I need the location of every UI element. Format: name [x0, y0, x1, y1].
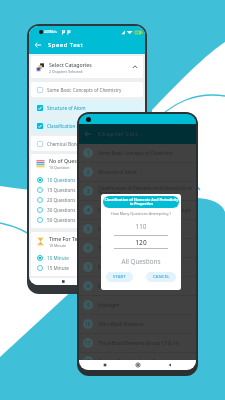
staticText: 8 [87, 283, 90, 289]
button[interactable]: Back [166, 361, 174, 369]
staticText: 3 [87, 188, 90, 194]
button[interactable]: Time For Test [31, 232, 143, 250]
staticText: Chemical Bonding [47, 141, 87, 147]
staticText: 5 [87, 226, 90, 232]
button[interactable]: 15 Minute [31, 263, 143, 273]
button[interactable]: 8 [79, 277, 196, 296]
staticText: Thermodynamics [98, 245, 192, 251]
staticText: 11 [85, 340, 91, 346]
button[interactable]: 7 [79, 258, 196, 277]
button[interactable]: Select Catagories [31, 56, 143, 78]
staticText: Time For Test [49, 235, 83, 242]
staticText: 30 Questions [47, 207, 76, 213]
staticText: Classification of Elements And Periodici… [98, 185, 192, 197]
button[interactable]: No of Questions [31, 154, 143, 172]
button[interactable]: 20 Questions [31, 195, 143, 205]
staticText: 110 [101, 222, 181, 231]
staticText: 1 [87, 150, 90, 156]
staticText: Some Basic Concepts of Chemistry [98, 150, 192, 156]
button[interactable]: 10 Questions [31, 175, 143, 185]
staticText: Chemical Bonding and Molecular Structure [98, 207, 192, 213]
button[interactable]: 50 Questions [31, 215, 143, 225]
staticText: 10 Minute [47, 255, 69, 261]
button[interactable]: 10 [79, 315, 196, 334]
staticText: START [113, 274, 126, 280]
staticText: 20 Questions [47, 197, 76, 203]
button[interactable]: Home [134, 361, 142, 369]
staticText: 2 Chapters Selected [49, 69, 83, 74]
staticText: Select Catagories [49, 61, 92, 68]
staticText: 15 Minute [47, 265, 69, 271]
staticText: Classification of Elements [47, 123, 102, 129]
button[interactable]: Chemical Bonding [31, 136, 143, 151]
button[interactable]: 2 [79, 163, 196, 182]
staticText: 120 [101, 238, 181, 247]
staticText: All Questions [101, 257, 181, 266]
staticText: States of Matter [98, 226, 192, 232]
button[interactable]: Some Basic Concepts of Chemistry [31, 82, 143, 97]
staticText: Equilibrium [98, 264, 192, 270]
staticText: Hydrogen [98, 302, 192, 308]
button[interactable]: 1 [79, 144, 196, 163]
button[interactable]: 12 [79, 353, 196, 370]
staticText: Organic Chemistry Some Basic [98, 358, 192, 364]
button[interactable]: 6 [79, 239, 196, 258]
button[interactable]: Back [84, 130, 92, 138]
staticText: The s-Block Elements [98, 321, 192, 327]
staticText: 10 Minute [49, 243, 66, 248]
staticText: Some Basic Concepts of Chemistry [47, 87, 122, 93]
staticText: Structure of Atom [47, 105, 86, 111]
staticText: Structure of Atom [98, 169, 192, 175]
button[interactable]: START [106, 272, 133, 282]
button[interactable]: Structure of Atom [31, 100, 143, 115]
staticText: The p-Block Elements (Group 13 & 14) [98, 340, 192, 346]
staticText: 4.00Kb/s [44, 30, 57, 34]
staticText: 4 [87, 207, 90, 213]
staticText: 10 [85, 321, 91, 327]
staticText: 15 Questions [47, 187, 76, 193]
staticText: 10 Questions [47, 177, 76, 183]
button[interactable]: Recents [101, 361, 109, 369]
button[interactable]: 9 [79, 296, 196, 315]
staticText: 7 [87, 264, 90, 270]
button[interactable]: 15 Questions [31, 185, 143, 195]
staticText: 6 [87, 245, 90, 251]
staticText: 9 [87, 302, 90, 308]
button[interactable]: 5 [79, 220, 196, 239]
button[interactable]: 30 Questions [31, 205, 143, 215]
staticText: 12 [85, 358, 91, 364]
staticText: Speed Test [48, 41, 84, 49]
staticText: CANCEL [153, 274, 170, 280]
staticText: 2 [87, 169, 90, 175]
staticText: Classification of Elements And Periodici… [104, 197, 179, 207]
button[interactable]: 11 [79, 334, 196, 353]
staticText: 50 Questions [47, 217, 76, 223]
button[interactable]: 4 [79, 201, 196, 220]
button[interactable]: Classification of Elements [31, 118, 143, 133]
button[interactable]: CANCEL [146, 272, 176, 282]
button[interactable]: Back [34, 41, 42, 49]
staticText: Redox Reactions [98, 283, 192, 289]
staticText: Chapter List [98, 130, 138, 138]
staticText: How Many Questions Attempting ? [101, 211, 181, 216]
staticText: No of Questions [49, 157, 90, 164]
staticText: 10 Question [49, 165, 70, 170]
button[interactable]: 3 [79, 182, 196, 201]
button[interactable]: 10 Minute [31, 253, 143, 263]
